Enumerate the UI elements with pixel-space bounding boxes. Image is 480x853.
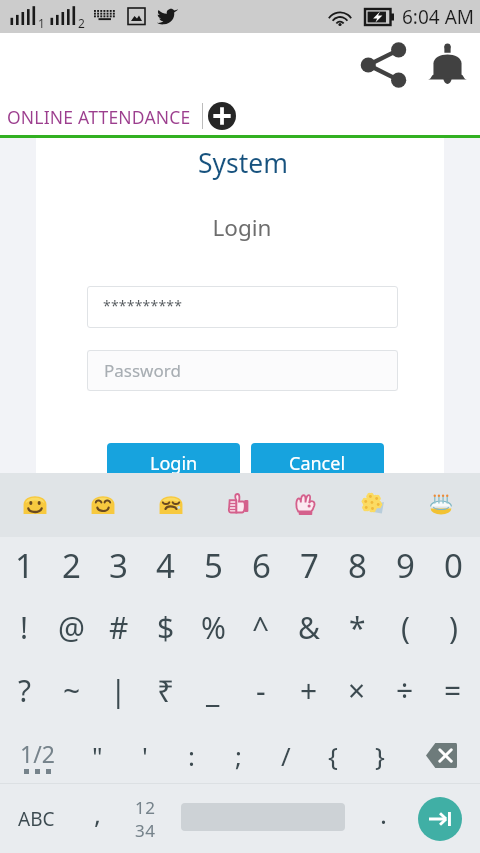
staticText: { <box>328 738 338 773</box>
button[interactable]: 8 <box>333 534 381 597</box>
staticText: 6 <box>252 543 271 588</box>
staticText: 1 <box>38 15 45 31</box>
button[interactable]: : <box>168 726 215 784</box>
staticText: ABC <box>18 806 55 832</box>
button[interactable]: Backspace <box>403 726 480 784</box>
button[interactable]: - <box>237 659 285 722</box>
staticText: 1/2 <box>20 738 55 769</box>
button[interactable]: ********** <box>87 286 398 328</box>
button[interactable]: | <box>95 659 142 722</box>
staticText: 1 <box>15 543 34 588</box>
staticText: ^ <box>252 607 270 648</box>
staticText: . <box>380 796 387 831</box>
staticText: × <box>348 670 366 711</box>
staticText: 9 <box>396 543 415 588</box>
button[interactable]: 3 <box>95 534 142 597</box>
button[interactable]: 5 <box>189 534 237 597</box>
staticText: ********** <box>103 296 183 315</box>
button[interactable]: Emoji 1 <box>11 480 59 528</box>
button[interactable]: ) <box>429 596 477 659</box>
button[interactable]: _ <box>189 659 237 722</box>
staticText: } <box>375 738 385 773</box>
button[interactable]: Share <box>356 38 410 92</box>
staticText: 34 <box>135 819 156 842</box>
button[interactable]: Cancel <box>251 443 384 483</box>
button[interactable]: ONLINE ATTENDANCE <box>7 105 191 129</box>
button[interactable]: , <box>75 784 119 853</box>
button[interactable]: Numbers <box>123 784 167 853</box>
staticText: : <box>188 738 195 773</box>
button[interactable]: Emoji 4 <box>215 480 263 528</box>
button[interactable]: ' <box>121 726 168 784</box>
button[interactable]: Enter <box>418 797 462 841</box>
staticText: 0 <box>444 543 463 588</box>
button[interactable]: @ <box>48 596 95 659</box>
staticText: ? <box>18 670 32 711</box>
button[interactable]: ( <box>381 596 429 659</box>
staticText: 3 <box>109 543 128 588</box>
button[interactable]: ^ <box>237 596 285 659</box>
button[interactable]: 2 <box>48 534 95 597</box>
button[interactable]: × <box>333 659 381 722</box>
staticText: / <box>281 738 291 773</box>
staticText: _ <box>206 670 220 711</box>
staticText: 2 <box>62 543 81 588</box>
button[interactable]: ~ <box>48 659 95 722</box>
button[interactable]: ? <box>1 659 48 722</box>
staticText: + <box>300 670 318 711</box>
button[interactable]: Emoji 6 <box>349 480 397 528</box>
button[interactable]: ₹ <box>142 659 189 722</box>
button[interactable]: & <box>285 596 333 659</box>
staticText: ) <box>449 607 458 648</box>
button[interactable]: Login <box>107 443 240 483</box>
button[interactable]: { <box>309 726 356 784</box>
button[interactable]: Emoji 5 <box>282 480 330 528</box>
button[interactable]: 7 <box>285 534 333 597</box>
button[interactable]: } <box>356 726 403 784</box>
staticText: 5 <box>204 543 223 588</box>
button[interactable]: . <box>363 784 403 853</box>
staticText: ÷ <box>396 670 414 711</box>
button[interactable]: ÷ <box>381 659 429 722</box>
button[interactable]: Emoji 7 <box>417 480 465 528</box>
button[interactable]: 0 <box>429 534 477 597</box>
staticText: ' <box>142 738 148 773</box>
staticText: | <box>110 670 127 711</box>
button[interactable]: 9 <box>381 534 429 597</box>
button[interactable]: Notifications <box>421 37 474 90</box>
button[interactable]: ; <box>215 726 262 784</box>
button[interactable]: # <box>95 596 142 659</box>
staticText: Password <box>104 359 181 382</box>
button[interactable]: + <box>285 659 333 722</box>
staticText: " <box>92 738 103 773</box>
staticText: 2 <box>78 15 85 31</box>
staticText: Login <box>150 451 198 476</box>
staticText: ! <box>20 607 29 648</box>
staticText: & <box>298 607 320 648</box>
button[interactable]: * <box>333 596 381 659</box>
button[interactable]: Add <box>208 102 236 130</box>
staticText: ; <box>235 738 242 773</box>
button[interactable]: Page 1 of 2 <box>0 726 74 784</box>
button[interactable]: / <box>262 726 309 784</box>
button[interactable]: 6 <box>237 534 285 597</box>
button[interactable]: 4 <box>142 534 189 597</box>
staticText: Login <box>2 212 480 243</box>
button[interactable]: 1 <box>1 534 48 597</box>
button[interactable]: Emoji 3 <box>147 480 195 528</box>
button[interactable]: = <box>429 659 477 722</box>
staticText: # <box>109 607 129 648</box>
button[interactable]: Password <box>87 350 398 391</box>
staticText: 7 <box>300 543 319 588</box>
button[interactable]: ABC <box>4 784 68 853</box>
staticText: ( <box>401 607 410 648</box>
button[interactable]: % <box>189 596 237 659</box>
button[interactable]: Emoji 2 <box>79 480 127 528</box>
staticText: Cancel <box>289 451 346 476</box>
button[interactable]: ! <box>1 596 48 659</box>
staticText: System <box>3 145 480 181</box>
button[interactable]: " <box>74 726 121 784</box>
staticText: 8 <box>348 543 367 588</box>
button[interactable]: $ <box>142 596 189 659</box>
